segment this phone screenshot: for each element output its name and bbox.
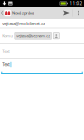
button[interactable]: Text [0,44,84,58]
staticText: Text [2,61,10,67]
button[interactable]: vejtasa@mobilenet.cz [0,19,84,28]
staticText: Text [2,48,10,54]
button[interactable]: More options [73,7,84,19]
button[interactable]: Back [0,7,12,19]
button[interactable]: Send [60,7,72,19]
staticText: vejtasa@mobilenet.cz [2,20,45,26]
staticText: vejtasa@seznam.cz [16,33,50,38]
staticText: 11:02 [70,0,83,7]
staticText: Komu: [2,33,13,38]
staticText: Nová zpráva [12,10,34,16]
button[interactable]: Text [0,59,84,74]
button[interactable]: vejtasa@seznam.cz [15,32,52,39]
button[interactable]: Choose contact [53,33,59,39]
